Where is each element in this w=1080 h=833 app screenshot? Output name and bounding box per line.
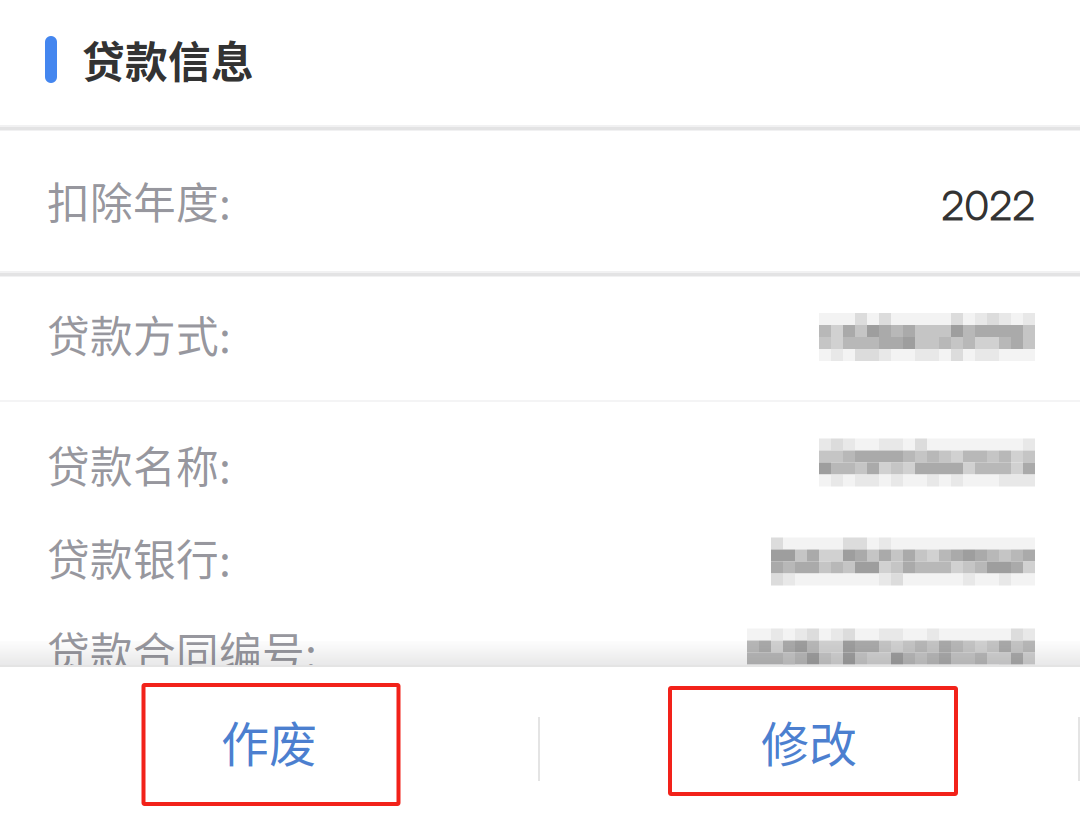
- staticText: 贷款方式:: [47, 303, 231, 365]
- button[interactable]: 作废: [0, 665, 538, 833]
- staticText: 扣除年度:: [47, 170, 231, 231]
- staticText: 贷款银行:: [47, 527, 231, 588]
- button[interactable]: 修改: [540, 665, 1078, 833]
- staticText: 贷款信息: [82, 29, 254, 90]
- staticText: 贷款名称:: [47, 434, 231, 495]
- staticText: 2022: [941, 180, 1035, 230]
- staticText: 贷款合同编号:: [47, 620, 317, 681]
- staticText: 作废: [221, 706, 317, 776]
- staticText: 修改: [761, 706, 857, 776]
